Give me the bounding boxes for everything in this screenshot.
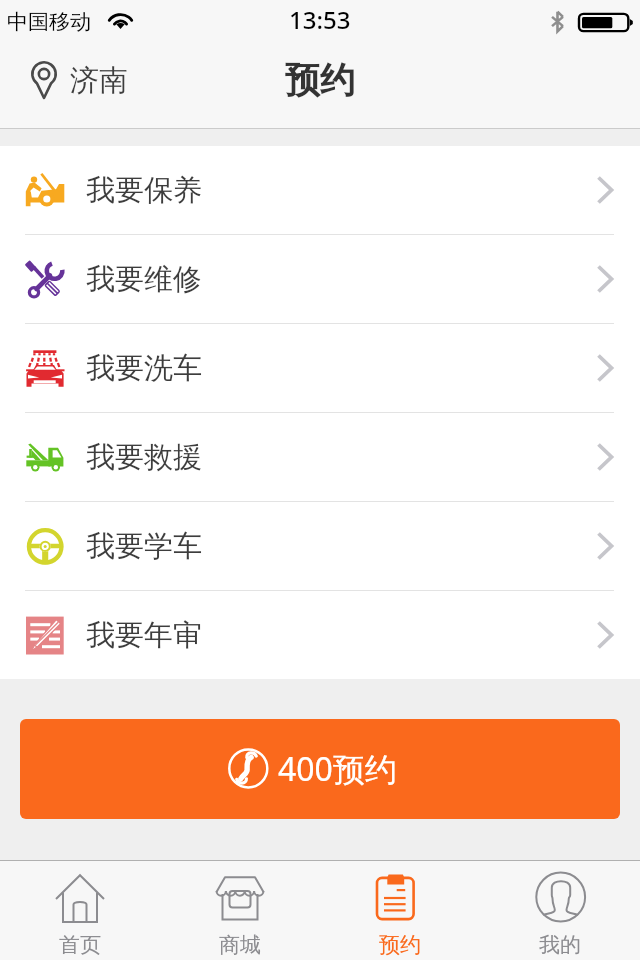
button[interactable]: 我要年审 xyxy=(0,591,640,679)
staticText: 我要学车 xyxy=(86,528,202,565)
button[interactable]: 400预约 xyxy=(20,719,620,819)
staticText: 商城 xyxy=(219,932,261,958)
staticText: 我要年审 xyxy=(86,617,202,654)
button[interactable]: 我要洗车 xyxy=(0,324,640,412)
button[interactable]: 我的 xyxy=(480,861,640,960)
button[interactable]: 我要救援 xyxy=(0,413,640,501)
button[interactable]: 商城 xyxy=(160,861,320,960)
staticText: 我要保养 xyxy=(86,172,202,209)
button[interactable]: 预约 xyxy=(320,861,480,960)
button[interactable]: 我要学车 xyxy=(0,502,640,590)
staticText: 我要救援 xyxy=(86,439,202,476)
staticText: 13:53 xyxy=(289,3,351,36)
button[interactable]: 我要保养 xyxy=(0,146,640,234)
button[interactable]: 济南 xyxy=(0,61,140,99)
staticText: 400预约 xyxy=(278,747,397,791)
staticText: 济南 xyxy=(70,62,128,99)
staticText: 首页 xyxy=(59,932,101,958)
button[interactable]: 首页 xyxy=(0,861,160,960)
staticText: 预约 xyxy=(379,932,421,958)
button[interactable]: 我要维修 xyxy=(0,235,640,323)
staticText: 中国移动 xyxy=(7,9,91,35)
staticText: 我要洗车 xyxy=(86,350,202,387)
staticText: 预约 xyxy=(285,58,355,102)
staticText: 我要维修 xyxy=(86,261,202,298)
staticText: 我的 xyxy=(539,932,581,958)
